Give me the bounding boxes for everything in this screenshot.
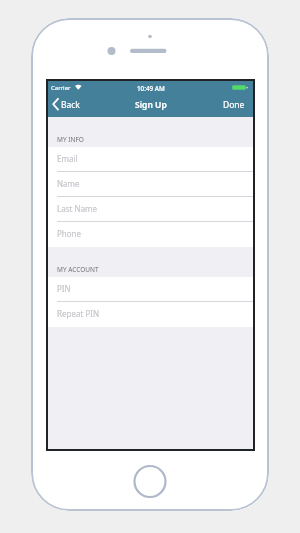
button[interactable]: Name	[48, 172, 253, 197]
staticText: Phone	[57, 228, 82, 239]
staticText: 10:49 AM	[137, 84, 165, 93]
staticText: Back	[61, 99, 80, 111]
button[interactable]: Phone	[48, 222, 253, 247]
staticText: Name	[57, 178, 80, 189]
staticText: PIN	[57, 283, 71, 294]
staticText: MY ACCOUNT	[57, 265, 99, 274]
staticText: MY INFO	[57, 135, 84, 144]
button[interactable]: Last Name	[48, 197, 253, 222]
staticText: Carrier	[51, 84, 71, 92]
button[interactable]: Done	[223, 99, 245, 111]
staticText: Last Name	[57, 203, 98, 214]
staticText: Email	[57, 153, 78, 164]
staticText: Repeat PIN	[57, 308, 100, 319]
button[interactable]: PIN	[48, 277, 253, 302]
button[interactable]: Repeat PIN	[48, 302, 253, 327]
staticText: Done	[223, 99, 245, 111]
staticText: Sign Up	[135, 99, 167, 111]
button[interactable]: Back	[61, 99, 80, 111]
button[interactable]: Email	[48, 147, 253, 172]
